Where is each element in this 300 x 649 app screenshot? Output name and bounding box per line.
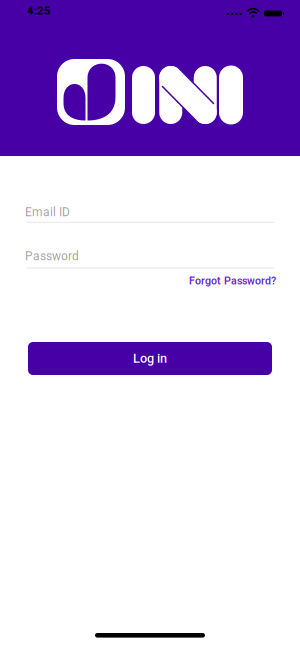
staticText: Log in [133, 351, 167, 366]
staticText: 4:25 [27, 4, 51, 17]
staticText: Password [25, 249, 79, 263]
staticText: Email ID [25, 205, 70, 219]
staticText: Forgot Password? [189, 274, 276, 287]
button[interactable]: Log in [28, 342, 272, 375]
button[interactable]: Forgot Password? [189, 274, 276, 287]
